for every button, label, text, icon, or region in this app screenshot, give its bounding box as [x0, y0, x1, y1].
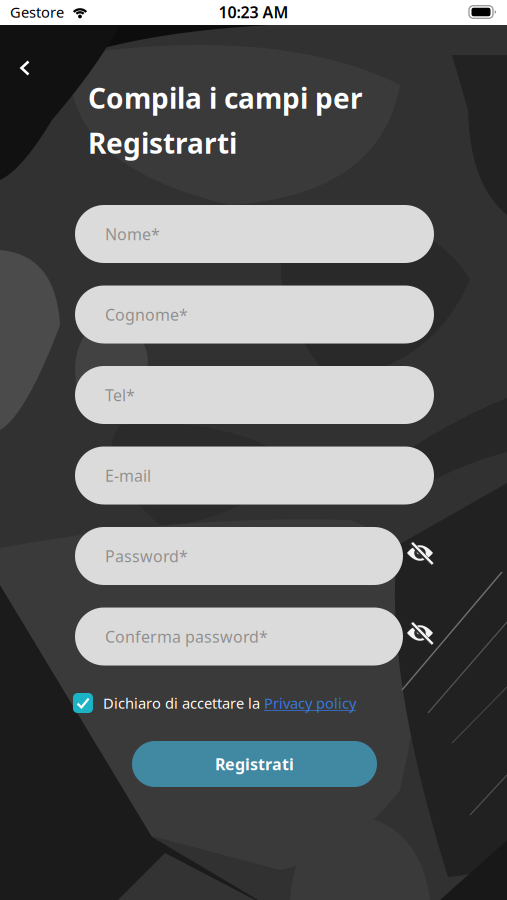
staticText: Password*: [105, 545, 188, 567]
staticText: 10:23 AM: [218, 1, 288, 23]
staticText: Conferma password*: [105, 626, 268, 647]
staticText: Dichiaro di accettare la: [103, 693, 260, 713]
staticText: Registrarti: [88, 124, 237, 162]
staticText: Privacy policy: [264, 693, 356, 713]
staticText: E-mail: [105, 465, 151, 486]
button[interactable]: Show confirm password: [406, 622, 433, 644]
button[interactable]: Registrati: [132, 741, 377, 787]
staticText: Registrati: [215, 753, 294, 775]
button[interactable]: Dichiaro di accettare la Privacy policy: [73, 693, 93, 713]
staticText: Tel*: [105, 384, 135, 406]
staticText: Nome*: [105, 223, 160, 245]
staticText: Cognome*: [105, 304, 188, 325]
button[interactable]: Show password: [406, 542, 433, 564]
staticText: Gestore: [10, 2, 64, 22]
button[interactable]: Privacy policy: [264, 693, 356, 713]
staticText: Compila i campi per: [88, 79, 363, 117]
button[interactable]: Back: [19, 60, 31, 76]
